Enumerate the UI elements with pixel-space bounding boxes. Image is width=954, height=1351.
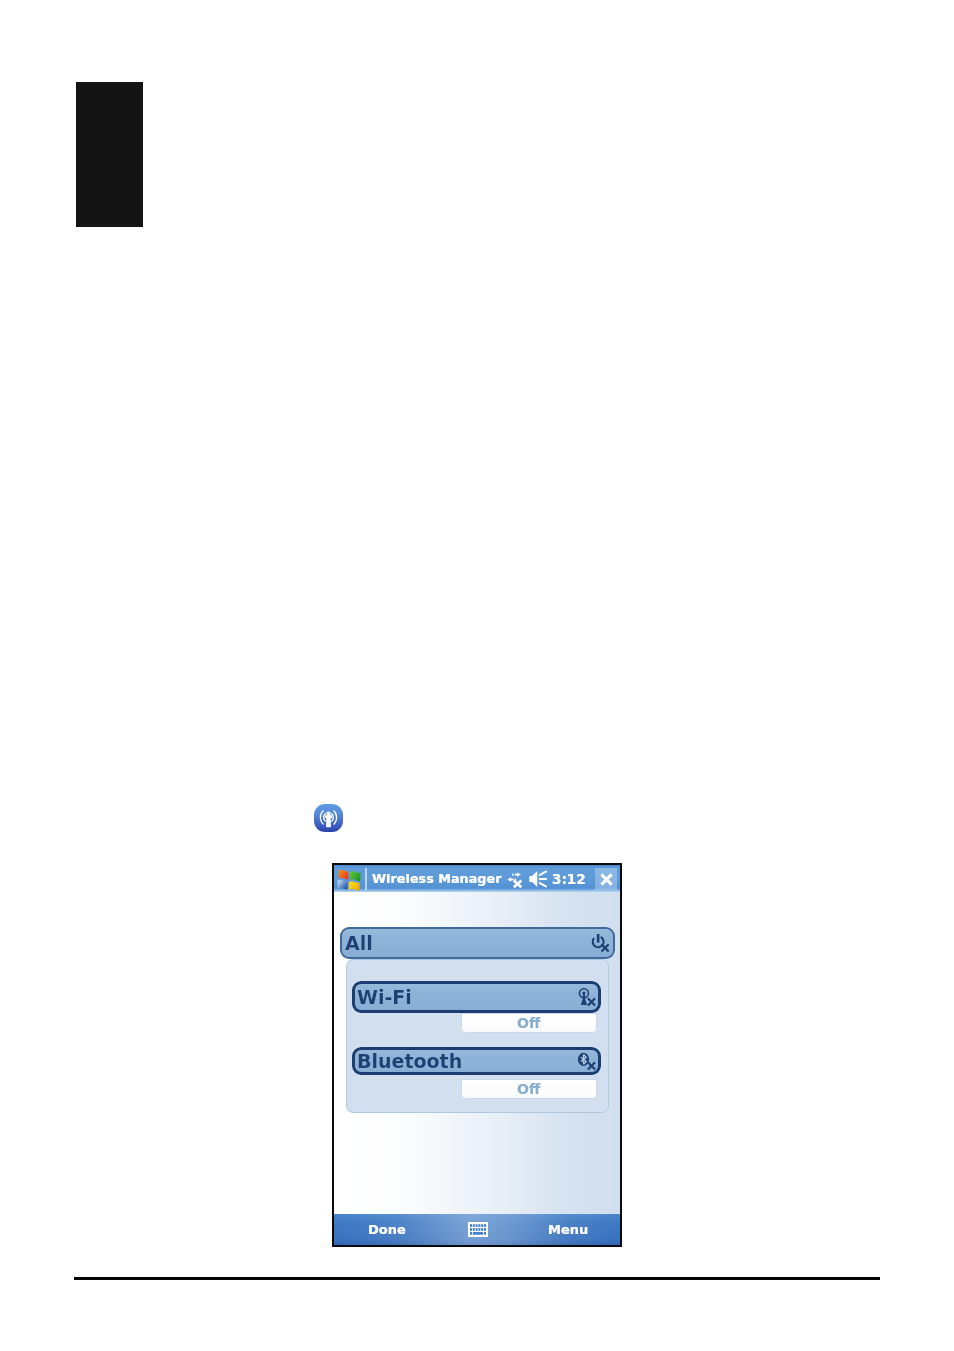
button[interactable]: Wireless Manager [314,804,343,832]
other: Volume [529,870,547,888]
staticText: Bluetooth [357,1050,463,1072]
button[interactable]: Done [334,1214,439,1245]
staticText: Wi-Fi [357,986,412,1008]
button[interactable]: Off [461,1013,597,1033]
button[interactable]: Bluetooth [352,1047,601,1075]
other: Wi-Fi off [577,987,598,1008]
button[interactable]: Off [461,1079,597,1099]
other: No connection [507,870,524,887]
staticText: All [345,932,373,954]
button[interactable]: All [340,927,615,959]
button[interactable]: Wi-Fi [352,981,601,1013]
button[interactable]: Keyboard [439,1214,516,1245]
button[interactable]: Close [595,868,617,890]
other: Turn all wireless off [591,933,612,954]
staticText: Off [517,1081,541,1097]
button[interactable]: Menu [516,1214,620,1245]
staticText: Menu [548,1222,589,1237]
other: Bluetooth off [577,1051,598,1072]
staticText: Wireless Manager [372,871,502,886]
staticText: 3:12 [552,871,586,887]
staticText: Done [368,1222,406,1237]
staticText: Off [517,1015,541,1031]
